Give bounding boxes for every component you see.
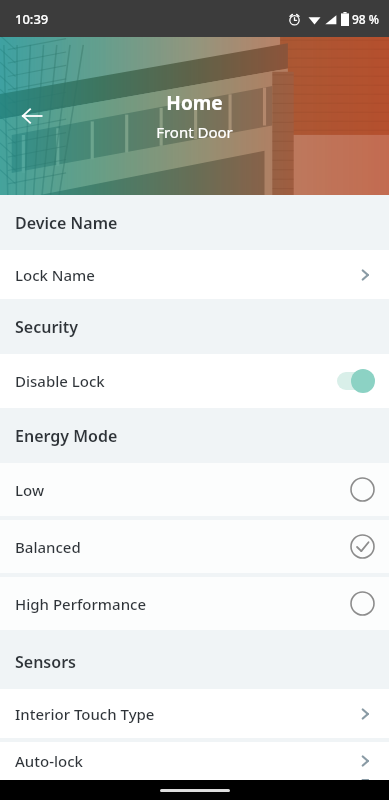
- staticText: Energy Mode: [15, 425, 118, 447]
- staticText: Auto-lock: [15, 751, 357, 771]
- button[interactable]: Interior Touch Type: [0, 689, 389, 738]
- button[interactable]: Disable Lock: [0, 354, 389, 408]
- staticText: Sensors: [15, 651, 76, 673]
- staticText: High Performance: [15, 594, 350, 614]
- staticText: 10:39: [15, 10, 49, 28]
- button[interactable]: Back: [8, 92, 56, 140]
- button[interactable]: Auto-lock: [0, 742, 389, 780]
- button[interactable]: Balanced: [0, 520, 389, 573]
- staticText: Lock Name: [15, 265, 357, 285]
- staticText: Balanced: [15, 537, 350, 557]
- staticText: Disable Lock: [15, 371, 337, 391]
- staticText: Front Door: [156, 122, 233, 142]
- staticText: 98 %: [352, 11, 380, 27]
- button[interactable]: High Performance: [0, 577, 389, 630]
- staticText: Low: [15, 480, 350, 500]
- button[interactable]: Lock Name: [0, 250, 389, 299]
- staticText: Security: [15, 316, 79, 338]
- button[interactable]: Low: [0, 463, 389, 516]
- staticText: Home: [166, 90, 223, 116]
- staticText: Device Name: [15, 212, 118, 234]
- staticText: Interior Touch Type: [15, 704, 357, 724]
